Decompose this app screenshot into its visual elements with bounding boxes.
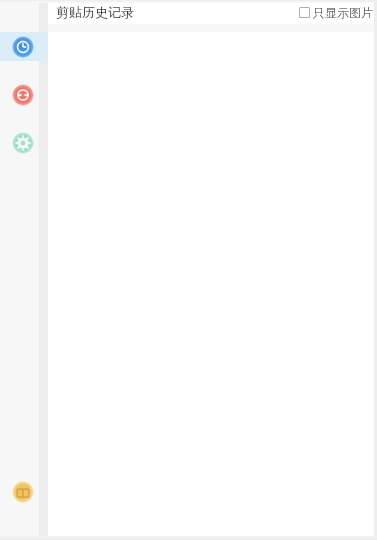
button[interactable]: Settings — [0, 128, 48, 157]
button[interactable]: Quick paste — [0, 80, 48, 109]
staticText: 剪贴历史记录 — [56, 4, 134, 20]
button[interactable]: Storage — [0, 477, 48, 506]
staticText: 只显示图片 — [313, 5, 373, 20]
button[interactable]: 只显示图片 — [299, 5, 373, 20]
button[interactable]: Clipboard history — [0, 32, 48, 61]
